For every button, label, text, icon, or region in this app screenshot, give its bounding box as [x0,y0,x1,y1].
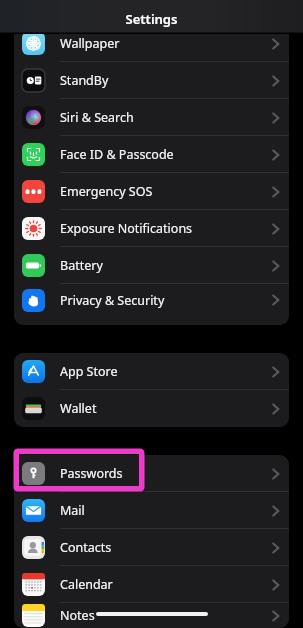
staticText: Face ID & Passcode [60,146,174,163]
staticText: Exposure Notifications [60,220,193,237]
staticText: Mail [60,502,85,519]
staticText: Wallet [60,400,97,417]
button[interactable]: Calendar [14,566,289,603]
button[interactable]: Exposure Notifications [14,210,289,247]
staticText: Passwords [60,465,123,482]
button[interactable]: Wallpaper [14,34,289,62]
button[interactable]: Privacy & Security [14,284,289,316]
staticText: Battery [60,257,103,274]
staticText: Settings [0,10,303,28]
button[interactable]: Battery [14,247,289,284]
button[interactable]: Notes [14,603,289,628]
button[interactable]: Emergency SOS [14,173,289,210]
staticText: StandBy [60,72,109,89]
button[interactable]: Wallet [14,390,289,427]
button[interactable]: App Store [14,353,289,390]
button[interactable]: Passwords [14,455,289,492]
staticText: Wallpaper [60,35,120,52]
staticText: Contacts [60,539,112,556]
staticText: Siri & Search [60,109,134,126]
staticText: Notes [60,607,95,624]
button[interactable]: Contacts [14,529,289,566]
button[interactable]: Mail [14,492,289,529]
staticText: Calendar [60,576,113,593]
button[interactable]: Face ID & Passcode [14,136,289,173]
staticText: Emergency SOS [60,183,153,200]
staticText: App Store [60,363,118,380]
button[interactable]: StandBy [14,62,289,99]
button[interactable]: Siri & Search [14,99,289,136]
staticText: Privacy & Security [60,292,165,309]
